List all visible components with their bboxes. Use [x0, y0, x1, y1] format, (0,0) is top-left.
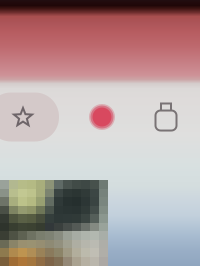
button[interactable]: Favourite — [0, 91, 46, 143]
button[interactable]: Open photo — [0, 180, 108, 266]
button[interactable]: Like — [79, 91, 125, 143]
button[interactable]: Shop — [143, 91, 189, 143]
